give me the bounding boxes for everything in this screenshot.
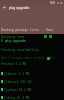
staticText: libcurl 941 kB — [6, 80, 32, 84]
staticText: libssl 2.1 MB — [6, 72, 30, 76]
button[interactable]: [ — [0, 78, 64, 85]
staticText: [ — [4, 80, 6, 84]
staticText: 9:41 — [50, 1, 56, 5]
staticText: [ — [4, 88, 6, 92]
staticText: Reading package lists... Done — [1, 28, 54, 32]
staticText: $ pkg upgrade — [1, 39, 26, 43]
staticText: [ — [4, 72, 6, 76]
button[interactable]: Back — [0, 4, 9, 11]
staticText: [ — [4, 96, 6, 100]
staticText: pkg upgrade — [9, 5, 30, 10]
staticText: Building tree — [1, 35, 25, 39]
button[interactable]: [ — [0, 86, 64, 93]
staticText: Fetched 3.4 MB — [1, 62, 27, 66]
staticText: python 18.2 MB — [6, 88, 32, 92]
staticText: Checking availability — [1, 48, 39, 52]
staticText: Get:1 termux-main stable InRel — [1, 56, 56, 60]
button[interactable]: [ — [0, 70, 64, 77]
button[interactable]: [ — [0, 94, 64, 100]
staticText: clang 61.4 MB — [6, 96, 30, 100]
